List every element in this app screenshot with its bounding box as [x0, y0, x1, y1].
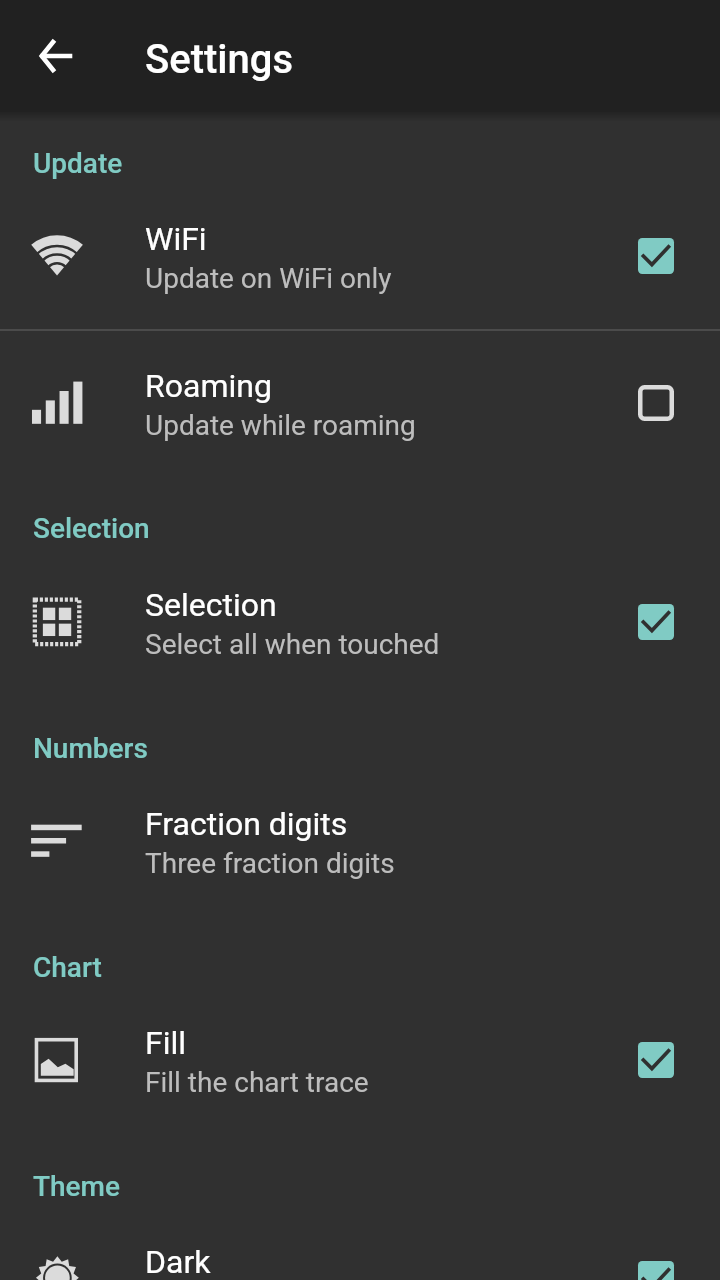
button[interactable]: Fill enabled [632, 1036, 680, 1084]
staticText: Selection [33, 512, 150, 545]
staticText: Selection [145, 586, 277, 624]
staticText: Update while roaming [145, 409, 416, 442]
staticText: Roaming [145, 367, 272, 405]
button[interactable]: Fraction digits [0, 768, 720, 915]
staticText: Fraction digits [145, 805, 348, 843]
staticText: WiFi [145, 220, 207, 258]
button[interactable]: Selection enabled [632, 598, 680, 646]
button[interactable]: Navigate up [24, 24, 88, 88]
button[interactable]: WiFi [0, 183, 720, 330]
staticText: Chart [33, 951, 102, 984]
staticText: Numbers [33, 732, 148, 765]
button[interactable]: Dark enabled [632, 1255, 680, 1280]
button[interactable]: Roaming disabled [632, 379, 680, 427]
staticText: Theme [33, 1170, 121, 1203]
staticText: Three fraction digits [145, 847, 395, 880]
button[interactable]: Fill [0, 987, 720, 1134]
staticText: Update on WiFi only [145, 262, 392, 295]
staticText: Fill the chart trace [145, 1066, 369, 1099]
staticText: Update [33, 147, 123, 180]
staticText: Settings [145, 36, 294, 83]
button[interactable]: WiFi enabled [632, 232, 680, 280]
staticText: Select all when touched [145, 628, 440, 661]
button[interactable]: Roaming [0, 330, 720, 477]
button[interactable]: Selection [0, 549, 720, 696]
staticText: Dark [145, 1243, 211, 1280]
button[interactable]: Dark [0, 1206, 720, 1280]
staticText: Fill [145, 1024, 187, 1062]
